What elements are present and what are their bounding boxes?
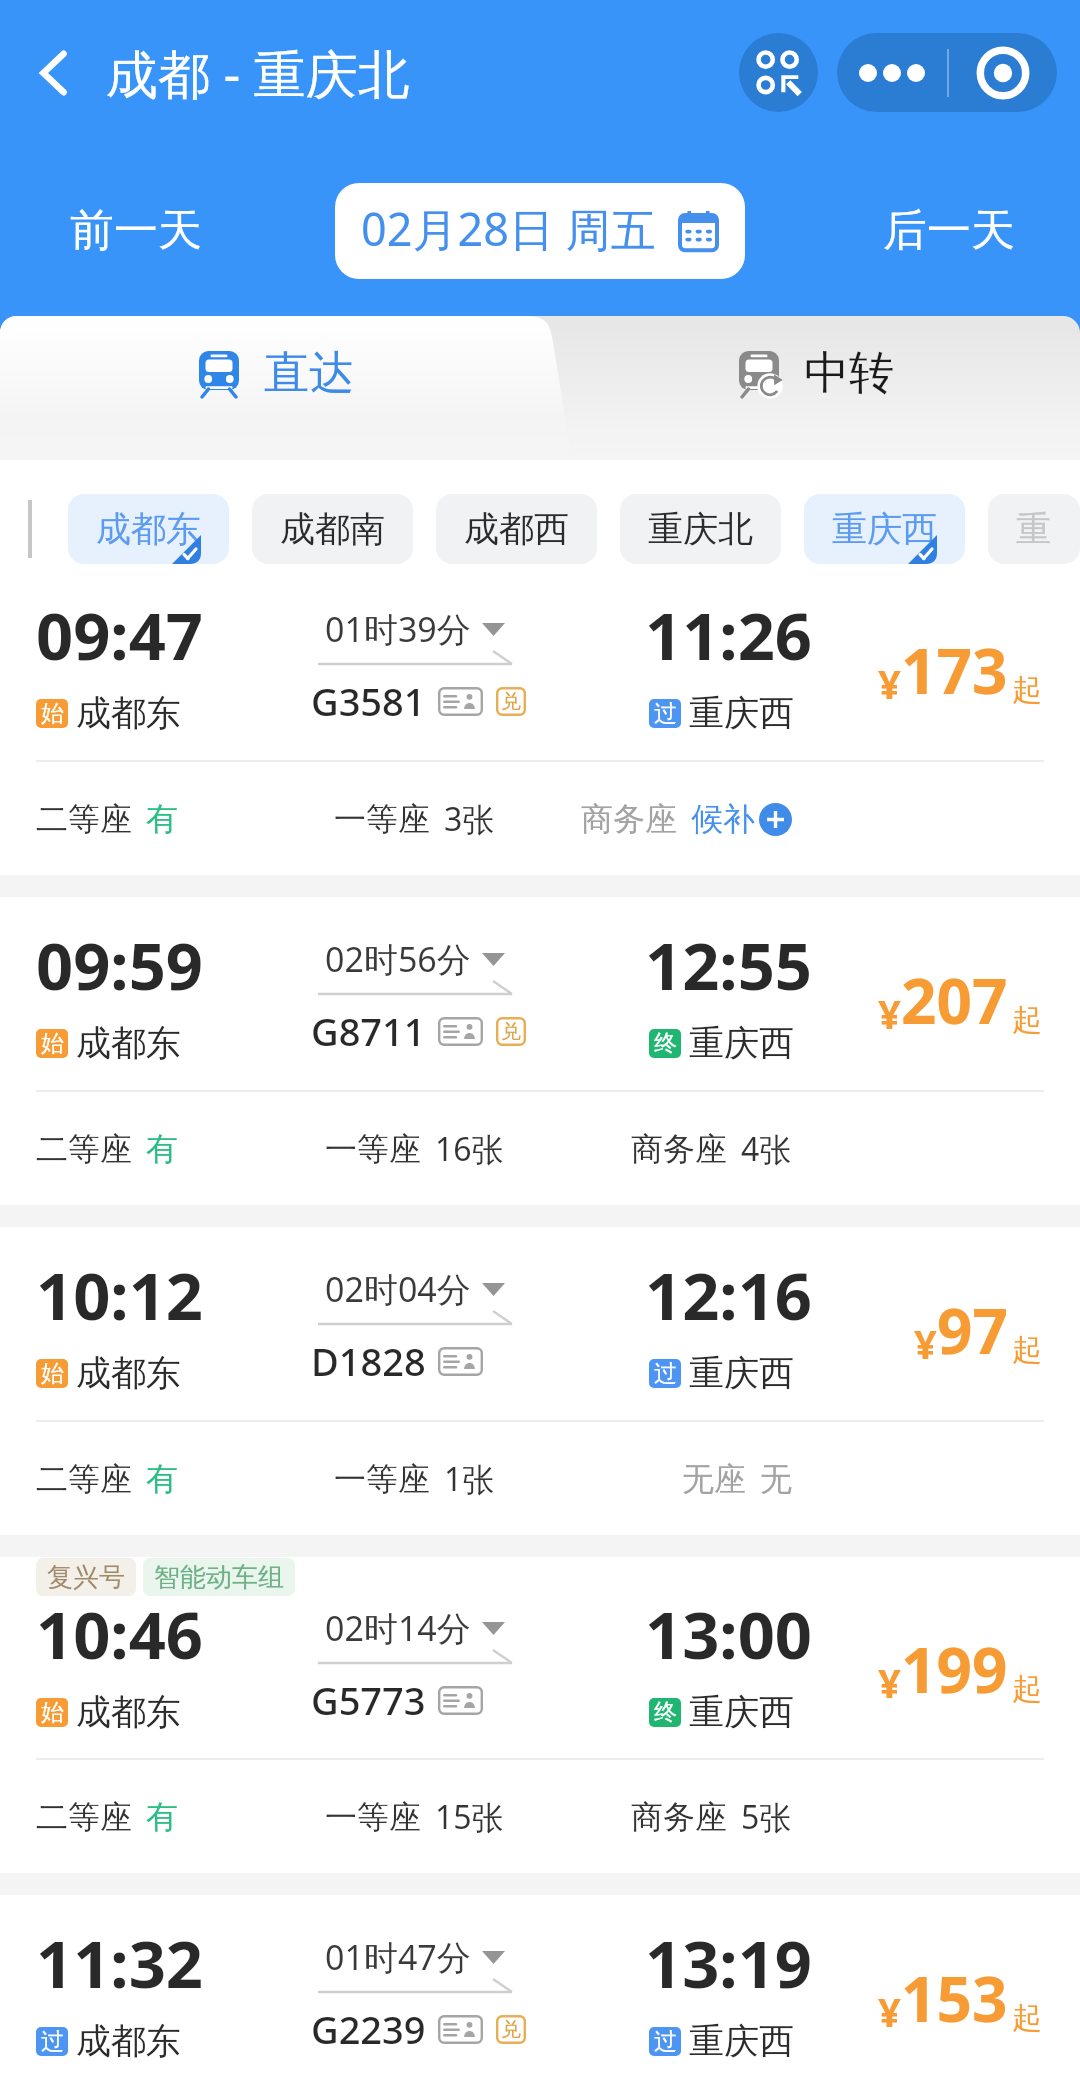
staticText: 商务座: [631, 1797, 727, 1837]
staticText: 02月28日 周五: [361, 198, 656, 259]
staticText: 01时39分: [325, 606, 471, 652]
staticText: 02时14分: [325, 1605, 471, 1651]
staticText: 复兴号: [47, 1561, 125, 1594]
staticText: ¥: [878, 656, 901, 710]
button[interactable]: 重庆西: [804, 494, 965, 564]
button[interactable]: 10:12: [0, 1227, 1080, 1535]
button[interactable]: 直达: [0, 316, 548, 460]
staticText: 一等座: [325, 1129, 421, 1169]
staticText: 12:16: [645, 1251, 812, 1340]
staticText: 13:19: [645, 1919, 812, 2008]
staticText: 有: [146, 1459, 178, 1499]
staticText: G8711: [311, 1005, 426, 1057]
button[interactable]: More options: [837, 33, 947, 112]
button[interactable]: 09:59: [0, 897, 1080, 1205]
staticText: 11:26: [645, 591, 812, 680]
staticText: 终: [654, 1029, 677, 1058]
staticText: ¥: [878, 1655, 901, 1709]
staticText: 起: [1012, 671, 1042, 709]
staticText: G2239: [311, 2003, 426, 2055]
staticText: 09:59: [36, 921, 203, 1010]
staticText: 重庆西: [689, 1351, 794, 1395]
button[interactable]: 02月28日 周五: [335, 183, 745, 279]
staticText: 过: [654, 1359, 677, 1388]
staticText: 02时04分: [325, 1266, 471, 1312]
staticText: 10:46: [36, 1590, 203, 1679]
staticText: 成都 - 重庆北: [106, 37, 410, 108]
staticText: 重庆西: [689, 1690, 794, 1734]
staticText: 无座: [682, 1459, 746, 1499]
button[interactable]: 后一天: [818, 145, 1080, 316]
staticText: 有: [146, 1797, 178, 1837]
staticText: 后一天: [883, 203, 1015, 258]
staticText: 173: [901, 628, 1008, 712]
button[interactable]: Add to waitlist: [759, 803, 792, 836]
button[interactable]: Close mini program: [949, 33, 1057, 112]
staticText: 199: [901, 1627, 1008, 1711]
staticText: 中转: [804, 345, 894, 402]
staticText: 重庆西: [832, 507, 937, 551]
staticText: 终: [654, 1698, 677, 1727]
staticText: 成都东: [76, 1351, 181, 1395]
staticText: 207: [901, 958, 1008, 1042]
button[interactable]: 中转: [548, 316, 1080, 460]
staticText: 成都东: [76, 1021, 181, 1065]
staticText: 09:47: [36, 591, 203, 680]
staticText: G3581: [311, 675, 426, 727]
staticText: 前一天: [70, 203, 202, 258]
button[interactable]: 11:32: [0, 1895, 1080, 2074]
staticText: 智能动车组: [154, 1561, 284, 1594]
button[interactable]: 成都东: [68, 494, 229, 564]
staticText: 成都东: [76, 1690, 181, 1734]
staticText: 二等座: [36, 799, 132, 839]
button[interactable]: 重庆北: [620, 494, 781, 564]
staticText: 重庆西: [689, 691, 794, 735]
staticText: 10:12: [36, 1251, 203, 1340]
staticText: 商务座: [631, 1129, 727, 1169]
staticText: 一等座: [334, 1459, 430, 1499]
staticText: 无: [760, 1459, 792, 1499]
staticText: 1张: [444, 1457, 495, 1501]
staticText: 兑: [501, 2017, 521, 2042]
button[interactable]: 成都南: [252, 494, 413, 564]
staticText: 始: [41, 1698, 64, 1727]
staticText: 二等座: [36, 1129, 132, 1169]
staticText: 起: [1012, 1670, 1042, 1708]
staticText: 起: [1012, 1331, 1042, 1369]
staticText: 13:00: [645, 1590, 812, 1679]
staticText: ¥: [914, 1316, 937, 1370]
staticText: 直达: [264, 345, 354, 402]
staticText: 兑: [501, 1019, 521, 1044]
button[interactable]: 09:47: [0, 567, 1080, 875]
staticText: 有: [146, 1129, 178, 1169]
staticText: 成都东: [76, 691, 181, 735]
staticText: 成都南: [280, 507, 385, 551]
staticText: 起: [1012, 1001, 1042, 1039]
staticText: 重庆南: [1016, 507, 1080, 551]
staticText: 重庆北: [648, 507, 753, 551]
staticText: ¥: [878, 986, 901, 1040]
staticText: 成都西: [464, 507, 569, 551]
button[interactable]: 前一天: [0, 145, 271, 316]
staticText: 始: [41, 1359, 64, 1388]
staticText: 商务座: [581, 799, 677, 839]
button[interactable]: Mini program menu: [739, 33, 818, 112]
staticText: ¥: [878, 1984, 901, 2038]
staticText: 153: [901, 1956, 1008, 2040]
button[interactable]: 重庆南: [988, 494, 1080, 564]
staticText: 重庆西: [689, 2019, 794, 2063]
staticText: 始: [41, 699, 64, 728]
staticText: 成都东: [96, 507, 201, 551]
button[interactable]: 成都西: [436, 494, 597, 564]
staticText: 01时47分: [325, 1934, 471, 1980]
staticText: D1828: [311, 1335, 426, 1387]
button[interactable]: 复兴号: [0, 1557, 1080, 1873]
staticText: 成都东: [76, 2019, 181, 2063]
staticText: 二等座: [36, 1459, 132, 1499]
staticText: 97: [937, 1288, 1008, 1372]
staticText: 4张: [741, 1127, 792, 1171]
staticText: 起: [1012, 1999, 1042, 2037]
staticText: 5张: [741, 1795, 792, 1839]
button[interactable]: Back: [21, 41, 85, 105]
staticText: G5773: [311, 1674, 426, 1726]
